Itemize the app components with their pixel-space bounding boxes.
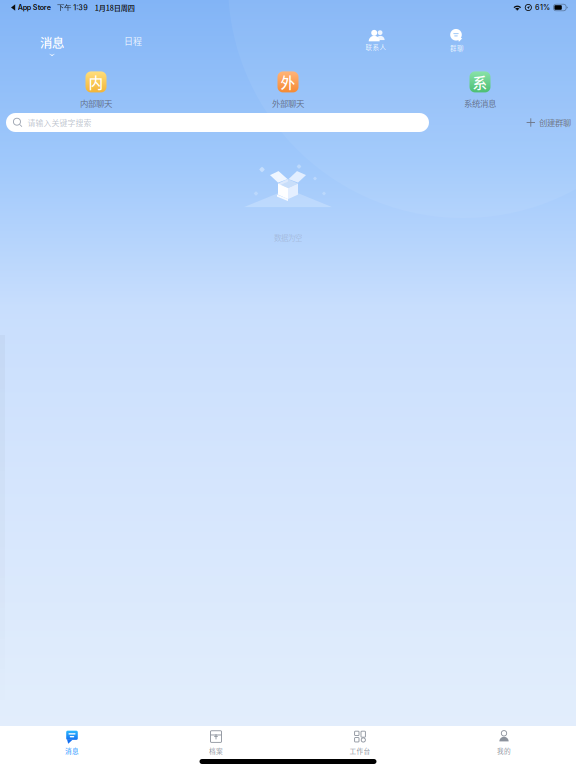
- staticText: 消息: [40, 33, 64, 51]
- button[interactable]: 档案: [144, 727, 288, 759]
- button[interactable]: 我的: [432, 727, 576, 759]
- staticText: 创建群聊: [539, 116, 571, 128]
- button[interactable]: 群聊: [435, 26, 479, 54]
- staticText: 联系人: [365, 42, 386, 52]
- staticText: 下午 1:39: [57, 3, 88, 12]
- button[interactable]: 工作台: [288, 727, 432, 759]
- button[interactable]: 系: [384, 66, 576, 109]
- staticText: 我的: [497, 746, 511, 756]
- staticText: 外部聊天: [272, 97, 304, 109]
- staticText: 群聊: [450, 43, 464, 53]
- staticText: 系: [472, 71, 487, 92]
- button[interactable]: 创建群聊: [527, 113, 571, 132]
- staticText: App Store: [18, 3, 51, 12]
- staticText: 请输入关键字搜索: [27, 117, 91, 128]
- staticText: 内: [88, 71, 103, 92]
- staticText: 内部聊天: [80, 97, 112, 109]
- button[interactable]: 内: [0, 66, 192, 109]
- button[interactable]: 消息: [0, 727, 144, 759]
- button[interactable]: 日程: [111, 27, 155, 53]
- staticText: 日程: [124, 34, 142, 47]
- staticText: 1月18日周四: [95, 2, 135, 13]
- button[interactable]: 请输入关键字搜索: [6, 113, 429, 132]
- staticText: 工作台: [349, 746, 370, 756]
- button[interactable]: 消息: [30, 27, 74, 53]
- button[interactable]: 联系人: [354, 26, 398, 54]
- staticText: 61%: [535, 3, 550, 12]
- staticText: 外: [280, 71, 295, 92]
- staticText: 系统消息: [464, 97, 496, 109]
- staticText: 档案: [209, 746, 223, 756]
- staticText: 数据为空: [274, 232, 302, 243]
- button[interactable]: 外: [192, 66, 384, 109]
- staticText: 消息: [65, 746, 79, 756]
